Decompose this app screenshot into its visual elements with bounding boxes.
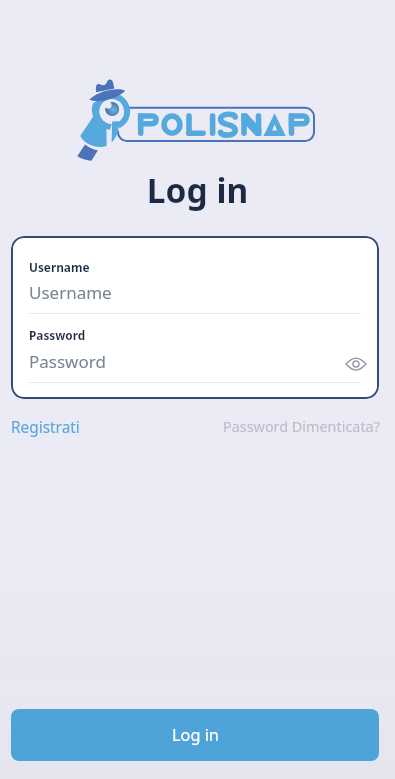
button[interactable]: Log in bbox=[11, 709, 379, 761]
staticText: Password bbox=[29, 350, 337, 373]
staticText: Username bbox=[29, 281, 361, 304]
button[interactable]: Show password bbox=[344, 352, 368, 376]
staticText: Password bbox=[29, 327, 86, 343]
button[interactable]: Registrati bbox=[11, 417, 80, 438]
staticText: Log in bbox=[0, 167, 395, 213]
staticText: Log in bbox=[172, 724, 219, 746]
staticText: Password Dimenticata? bbox=[223, 417, 380, 437]
staticText: Registrati bbox=[11, 417, 80, 438]
button[interactable]: Password Dimenticata? bbox=[223, 417, 380, 437]
staticText: Username bbox=[29, 259, 90, 275]
